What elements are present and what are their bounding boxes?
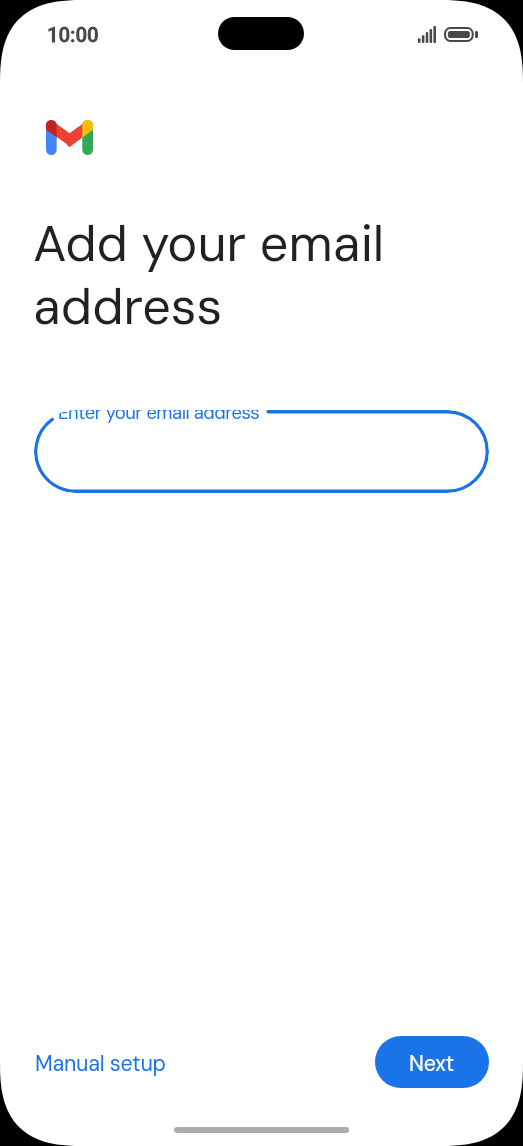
button[interactable]: Next xyxy=(375,1036,489,1088)
staticText: address xyxy=(33,274,223,340)
button[interactable]: Manual setup xyxy=(31,1036,170,1088)
staticText: 10:00 xyxy=(47,23,99,47)
staticText: Next xyxy=(409,1050,455,1078)
button[interactable]: Enter your email address xyxy=(34,410,489,493)
staticText: Add your email xyxy=(33,211,385,277)
staticText: Enter your email address xyxy=(58,410,260,425)
staticText: Manual setup xyxy=(35,1050,166,1078)
